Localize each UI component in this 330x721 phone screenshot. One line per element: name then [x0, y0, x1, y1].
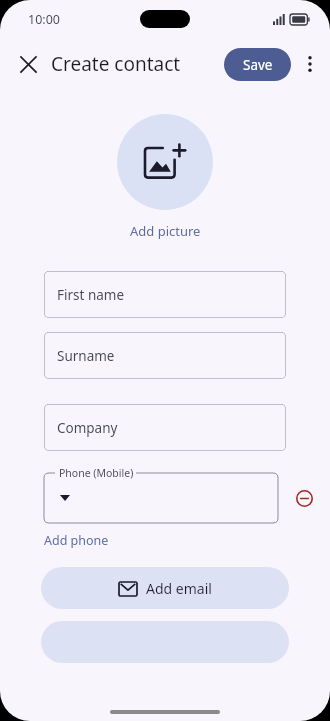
- staticText: Create contact: [51, 51, 181, 77]
- button[interactable]: Close: [10, 46, 46, 82]
- staticText: Phone (Mobile): [59, 466, 134, 480]
- staticText: Company: [57, 419, 118, 437]
- staticText: Add email: [146, 579, 212, 598]
- button[interactable]: Add phone: [44, 532, 109, 549]
- button[interactable]: Phone (Mobile): [44, 473, 278, 523]
- button[interactable]: First name: [44, 271, 286, 318]
- staticText: Surname: [57, 347, 115, 365]
- button[interactable]: Add address: [41, 621, 289, 663]
- button[interactable]: Add picture: [117, 114, 213, 210]
- button[interactable]: Surname: [44, 332, 286, 379]
- staticText: 10:00: [28, 11, 60, 28]
- staticText: Add picture: [130, 222, 201, 240]
- button[interactable]: Add email: [41, 567, 289, 609]
- staticText: First name: [57, 286, 125, 304]
- button[interactable]: Remove phone: [288, 482, 320, 514]
- staticText: Save: [243, 56, 273, 74]
- button[interactable]: More options: [294, 48, 326, 80]
- button[interactable]: Company: [44, 404, 286, 451]
- button[interactable]: Save: [224, 48, 291, 81]
